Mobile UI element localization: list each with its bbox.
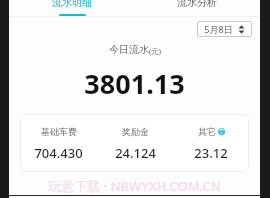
- staticText: 流水分析: [177, 0, 217, 9]
- staticText: 玩意下载 · NBWYXH.COM.CN: [48, 177, 221, 195]
- button[interactable]: 流水分析: [134, 0, 260, 17]
- staticText: 5月8日: [204, 23, 233, 35]
- staticText: 23.12: [194, 144, 228, 162]
- other: 其它说明: [218, 128, 225, 135]
- button[interactable]: 基础车费: [20, 114, 249, 172]
- button[interactable]: 流水明细: [9, 0, 134, 17]
- staticText: 奖励金: [122, 126, 149, 137]
- staticText: (元): [149, 46, 161, 56]
- staticText: 基础车费: [41, 126, 77, 137]
- staticText: 今日流水: [109, 43, 149, 56]
- staticText: 24.124: [115, 144, 156, 162]
- staticText: 3801.13: [84, 65, 185, 102]
- button[interactable]: 5月8日: [197, 21, 252, 37]
- staticText: 流水明细: [52, 0, 92, 9]
- button[interactable]: 奖励金: [97, 126, 173, 162]
- button[interactable]: 基础车费: [20, 126, 97, 162]
- staticText: 704.430: [34, 144, 83, 162]
- button[interactable]: 其它: [173, 126, 249, 162]
- staticText: 其它: [198, 126, 216, 137]
